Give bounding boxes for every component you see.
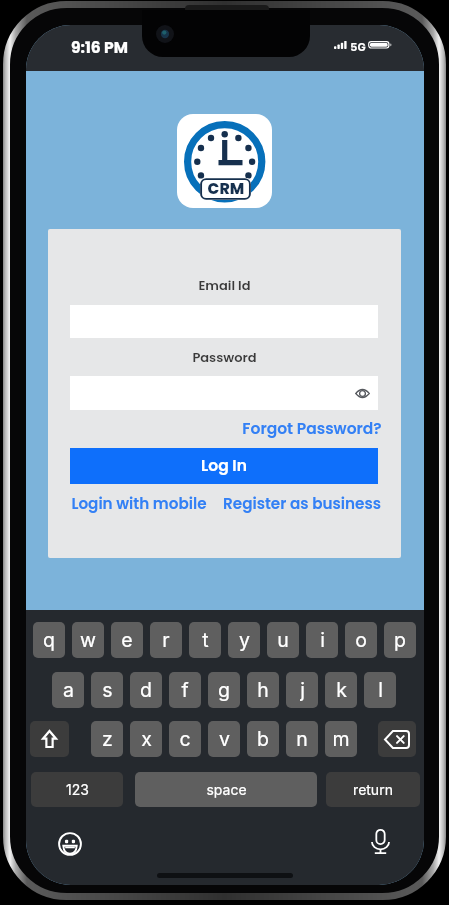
button[interactable]: c xyxy=(169,721,201,757)
staticText: v xyxy=(219,727,230,751)
staticText: space xyxy=(206,781,247,798)
button[interactable]: o xyxy=(345,622,377,658)
button[interactable]: u xyxy=(267,622,299,658)
staticText: r xyxy=(162,628,170,652)
button[interactable]: w xyxy=(72,622,104,658)
button[interactable]: Register as business xyxy=(220,491,383,515)
staticText: p xyxy=(394,628,406,652)
staticText: b xyxy=(257,727,269,751)
button[interactable]: b xyxy=(247,721,279,757)
button[interactable]: e xyxy=(111,622,143,658)
button[interactable]: z xyxy=(91,721,123,757)
button[interactable]: p xyxy=(384,622,416,658)
staticText: c xyxy=(179,727,191,751)
staticText: j xyxy=(300,678,305,702)
staticText: l xyxy=(378,678,383,702)
staticText: return xyxy=(353,781,393,798)
staticText: s xyxy=(102,678,113,702)
button[interactable]: r xyxy=(150,622,182,658)
staticText: k xyxy=(336,678,347,702)
staticText: d xyxy=(140,678,152,702)
button[interactable]: Forgot Password? xyxy=(208,417,382,441)
staticText: Email Id xyxy=(48,276,401,294)
staticText: n xyxy=(296,727,308,751)
button[interactable]: return xyxy=(326,772,420,807)
button[interactable]: i xyxy=(306,622,338,658)
staticText: g xyxy=(218,678,230,702)
button[interactable]: Log In xyxy=(70,448,378,484)
staticText: Login with mobile xyxy=(71,493,207,514)
button[interactable]: Backspace xyxy=(378,721,416,757)
button[interactable]: g xyxy=(208,672,240,708)
button[interactable]: m xyxy=(325,721,357,757)
staticText: Register as business xyxy=(223,493,381,514)
button[interactable]: h xyxy=(247,672,279,708)
button[interactable]: 123 xyxy=(31,772,123,807)
button[interactable]: k xyxy=(325,672,357,708)
staticText: CRM xyxy=(207,178,245,200)
button[interactable]: n xyxy=(286,721,318,757)
staticText: e xyxy=(121,628,133,652)
staticText: q xyxy=(43,628,55,652)
button[interactable]: Dictation xyxy=(363,824,398,859)
button[interactable]: v xyxy=(208,721,240,757)
button[interactable]: q xyxy=(33,622,65,658)
button[interactable]: Login with mobile xyxy=(70,491,208,515)
button[interactable]: Emoji keyboard xyxy=(52,826,87,861)
button[interactable]: y xyxy=(228,622,260,658)
button[interactable]: s xyxy=(91,672,123,708)
staticText: 123 xyxy=(66,781,89,798)
button[interactable]: Show password xyxy=(349,380,375,406)
staticText: i xyxy=(320,628,325,652)
staticText: h xyxy=(257,678,269,702)
button[interactable]: d xyxy=(130,672,162,708)
staticText: u xyxy=(277,628,289,652)
staticText: w xyxy=(80,628,96,652)
staticText: z xyxy=(102,727,113,751)
staticText: Forgot Password? xyxy=(242,418,382,440)
button[interactable]: t xyxy=(189,622,221,658)
button[interactable]: f xyxy=(169,672,201,708)
staticText: m xyxy=(332,727,350,751)
staticText: y xyxy=(239,628,250,652)
button[interactable]: Shift xyxy=(30,721,69,757)
button[interactable]: x xyxy=(130,721,162,757)
button[interactable]: a xyxy=(52,672,84,708)
staticText: 5G xyxy=(350,40,366,53)
staticText: x xyxy=(141,727,152,751)
button[interactable]: j xyxy=(286,672,318,708)
staticText: Password xyxy=(48,348,401,366)
staticText: 9:16 PM xyxy=(71,37,128,59)
staticText: a xyxy=(63,678,74,702)
staticText: Log In xyxy=(201,455,247,477)
button[interactable]: Show password xyxy=(70,376,378,410)
staticText: t xyxy=(202,628,209,652)
button[interactable]: l xyxy=(364,672,396,708)
staticText: f xyxy=(181,678,189,702)
button[interactable]: space xyxy=(135,772,317,807)
staticText: o xyxy=(355,628,367,652)
